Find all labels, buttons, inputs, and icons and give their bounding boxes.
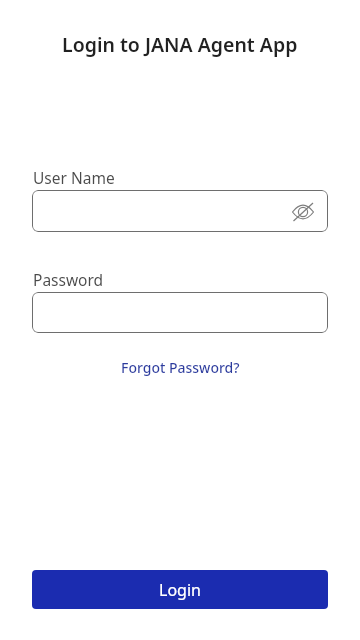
staticText: Login (159, 579, 201, 601)
button[interactable] (32, 292, 328, 333)
staticText: Forgot Password? (121, 358, 240, 377)
staticText: Login to JANA Agent App (62, 31, 298, 58)
button[interactable]: Forgot Password? (121, 358, 240, 377)
staticText: Password (33, 269, 104, 290)
button[interactable] (32, 190, 328, 232)
button[interactable] (290, 199, 316, 225)
button[interactable]: Login (32, 570, 328, 609)
staticText: User Name (33, 167, 115, 188)
